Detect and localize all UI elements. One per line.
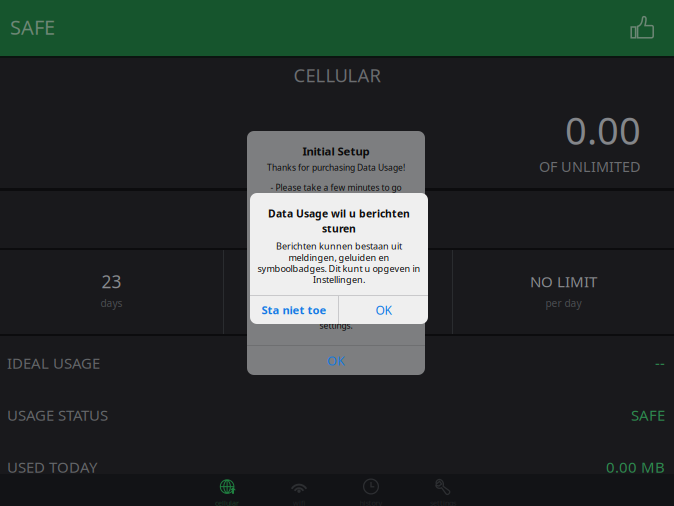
button[interactable]: settings (407, 474, 479, 506)
button[interactable]: OK (247, 346, 425, 375)
staticText: Data Usage wil u berichten (268, 206, 410, 221)
staticText: Instellingen. (313, 273, 365, 286)
staticText: Initial Setup (302, 143, 369, 159)
button[interactable]: history (335, 474, 407, 506)
button[interactable]: OK (339, 296, 428, 324)
staticText: OK (375, 302, 391, 318)
staticText: -- (655, 353, 665, 373)
staticText: CELLULAR (293, 62, 380, 88)
staticText: SAFE (631, 405, 665, 425)
staticText: of each billing cycle. (297, 274, 374, 285)
staticText: Thanks for purchasing Data Usage! (267, 162, 405, 173)
staticText: - Reset your counters at the start (271, 262, 401, 274)
staticText: - Data Usage can only track data (272, 228, 399, 239)
button[interactable]: wifi (263, 474, 335, 506)
staticText: USED TODAY (7, 457, 97, 477)
button[interactable]: Rate this app (630, 15, 655, 39)
staticText: wifi (293, 498, 305, 506)
staticText: OK (327, 352, 345, 369)
staticText: settings. (319, 320, 352, 331)
staticText: up your data plan. (300, 205, 371, 216)
staticText: IDEAL USAGE (7, 353, 100, 373)
staticText: Sta niet toe (261, 302, 326, 318)
staticText: 0.00 (565, 104, 641, 156)
staticText: USAGE STATUS (7, 405, 108, 425)
staticText: 23 (101, 270, 121, 293)
staticText: days (100, 296, 122, 310)
staticText: settings (430, 498, 456, 506)
staticText: 0.00 MB (606, 457, 665, 477)
staticText: and notifications at any time in (276, 308, 396, 320)
staticText: meldingen, geluiden en (288, 251, 389, 264)
button[interactable]: cellular (191, 474, 263, 506)
staticText: NO LIMIT (530, 271, 597, 292)
staticText: - You can change the alert limits (273, 297, 398, 308)
staticText: history (359, 498, 382, 506)
staticText: Berichten kunnen bestaan uit (276, 240, 402, 252)
staticText: sturen (322, 221, 356, 236)
staticText: SAFE (10, 13, 55, 41)
staticText: cellular (215, 498, 239, 506)
staticText: symboolbadges. Dit kunt u opgeven in (257, 262, 420, 275)
button[interactable]: Sta niet toe (250, 296, 338, 324)
staticText: while the app is running. (288, 239, 384, 251)
staticText: per day (545, 296, 581, 310)
staticText: - Please take a few minutes to go (270, 182, 401, 193)
staticText: OF UNLIMITED (539, 157, 641, 176)
